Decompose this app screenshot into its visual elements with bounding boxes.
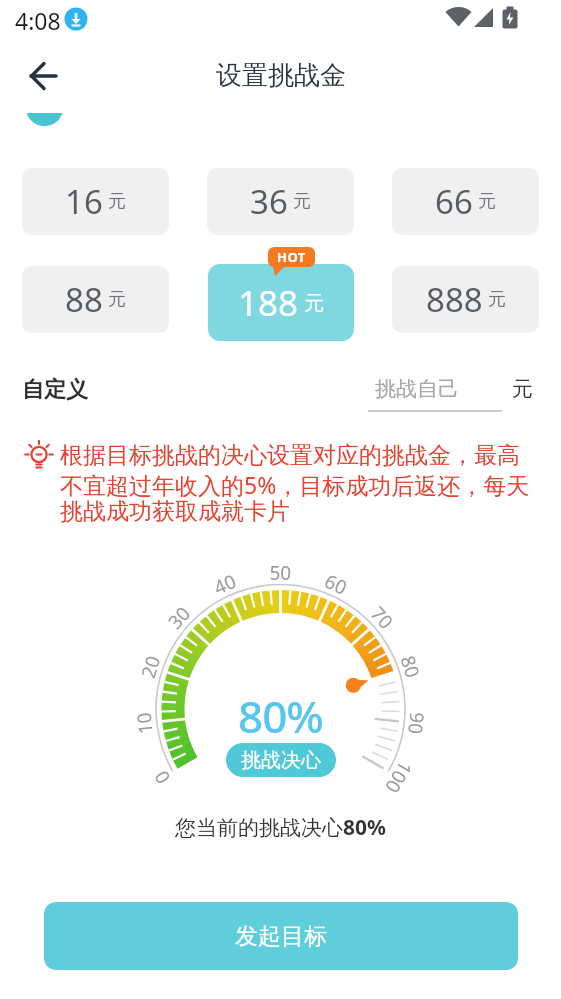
staticText: 根据目标挑战的决心设置对应的挑战金，最高 [60, 441, 520, 470]
staticText: 80% [238, 686, 323, 746]
staticText: 元 [108, 190, 126, 213]
staticText: 16 [65, 179, 103, 224]
staticText: 发起目标 [235, 922, 327, 951]
staticText: 不宜超过年收入的5%，目标成功后返还，每天 [60, 469, 530, 500]
staticText: 888 [426, 277, 483, 322]
staticText: 元 [488, 288, 506, 311]
staticText: 您当前的挑战决心80% [175, 813, 386, 842]
staticText: 66 [435, 179, 473, 224]
button[interactable]: 188 [208, 264, 354, 341]
staticText: HOT [277, 248, 306, 266]
button[interactable]: 888 [392, 266, 539, 333]
staticText: 自定义 [22, 376, 88, 404]
staticText: 设置挑战金 [216, 59, 346, 92]
button[interactable] [29, 61, 59, 91]
button[interactable]: 88 [22, 266, 169, 333]
staticText: 88 [65, 277, 103, 322]
staticText: 4:08 [15, 5, 61, 36]
staticText: 元 [293, 190, 311, 213]
staticText: 36 [250, 179, 288, 224]
button[interactable]: 66 [392, 168, 539, 235]
staticText: 元 [512, 376, 533, 402]
staticText: 挑战决心 [241, 748, 321, 773]
staticText: 元 [108, 288, 126, 311]
button[interactable]: 16 [22, 168, 169, 235]
staticText: 188 [238, 279, 299, 327]
staticText: 挑战自己 [375, 376, 459, 402]
staticText: 挑战成功获取成就卡片 [60, 497, 290, 526]
staticText: 元 [478, 190, 496, 213]
staticText: 元 [304, 291, 324, 316]
button[interactable]: 发起目标 [44, 902, 518, 970]
button[interactable]: 自定义 [0, 370, 561, 420]
button[interactable]: 36 [207, 168, 354, 235]
